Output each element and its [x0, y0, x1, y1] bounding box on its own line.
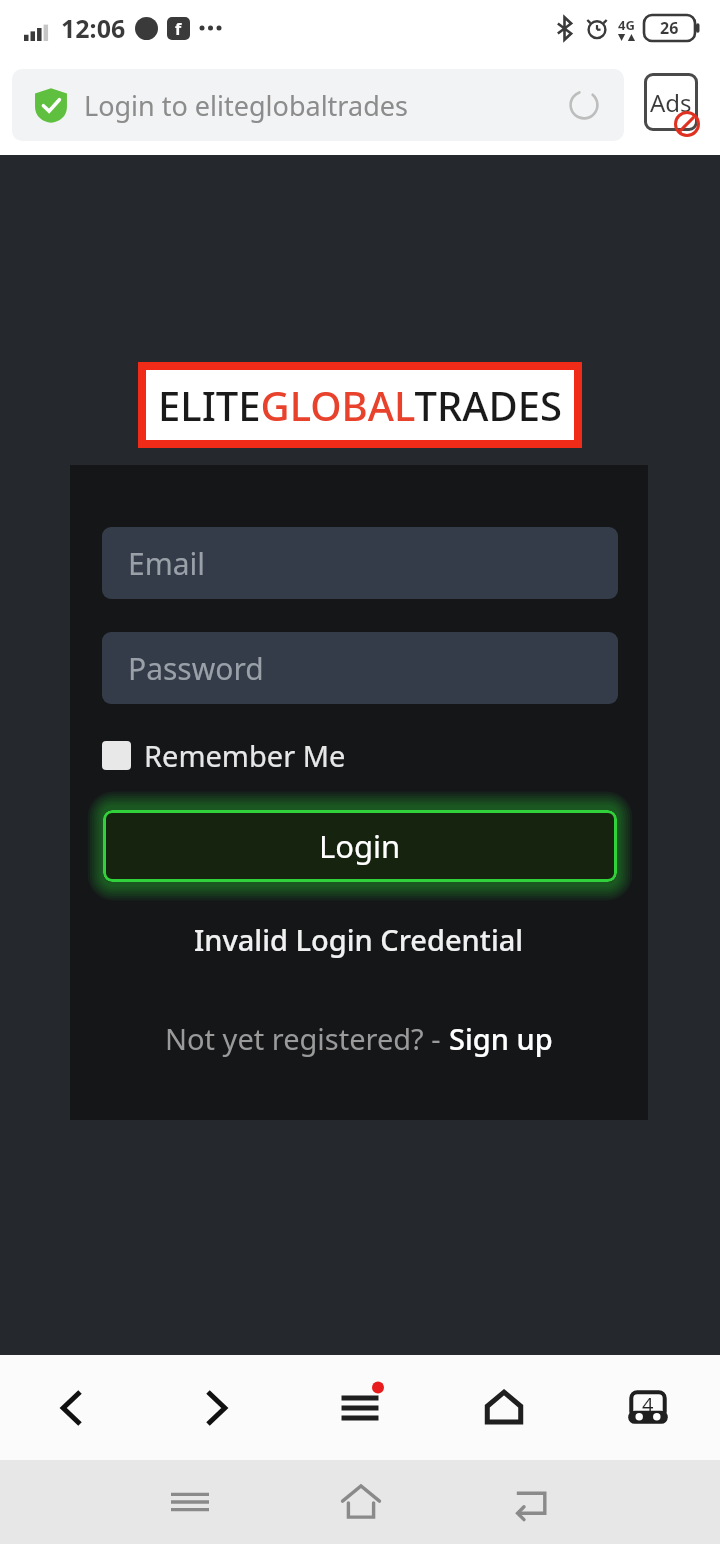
button[interactable]: Login: [103, 810, 617, 882]
staticText: Email: [128, 543, 206, 584]
button[interactable]: Sign up: [449, 1019, 553, 1058]
staticText: Remember Me: [144, 736, 346, 775]
staticText: ELITEGLOBALTRADES: [158, 378, 562, 432]
button[interactable]: Back: [446, 1460, 617, 1544]
button[interactable]: Ad blocker: [624, 55, 720, 155]
button[interactable]: Reload: [564, 85, 604, 125]
button[interactable]: Login to eliteglobaltrades: [12, 69, 624, 141]
button[interactable]: Password: [102, 632, 618, 704]
button[interactable]: Remember Me: [102, 736, 346, 775]
staticText: 4G: [618, 16, 635, 34]
staticText: f: [175, 18, 182, 40]
staticText: 26: [660, 17, 679, 39]
button[interactable]: Home: [432, 1355, 576, 1460]
staticText: 12:06: [61, 11, 126, 45]
button[interactable]: Back: [0, 1355, 144, 1460]
button[interactable]: Tabs: [576, 1355, 720, 1460]
staticText: 4: [642, 1391, 654, 1418]
button[interactable]: Email: [102, 527, 618, 599]
staticText: Sign up: [449, 1019, 553, 1058]
staticText: Not yet registered? -: [165, 1019, 449, 1058]
button[interactable]: Recents: [104, 1460, 275, 1544]
staticText: Password: [128, 648, 264, 689]
staticText: Ads: [650, 86, 692, 119]
staticText: Invalid Login Credential: [194, 920, 524, 959]
button[interactable]: Home: [275, 1460, 446, 1544]
button[interactable]: Menu: [288, 1355, 432, 1460]
staticText: Login: [319, 825, 401, 867]
button[interactable]: Forward: [144, 1355, 288, 1460]
staticText: Login to eliteglobaltrades: [84, 87, 408, 124]
